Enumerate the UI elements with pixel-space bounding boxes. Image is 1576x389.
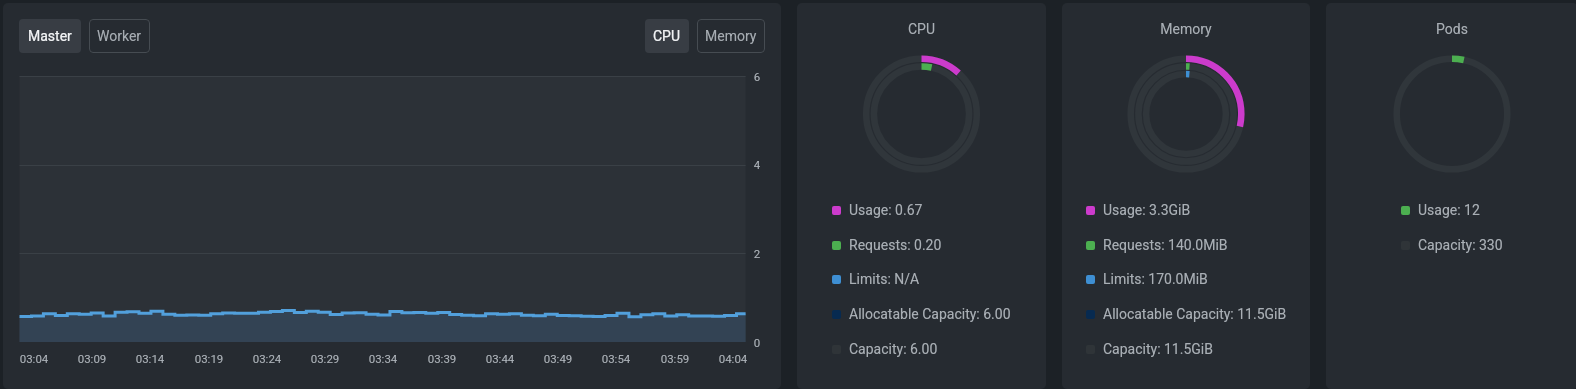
- staticText: 03:44: [470, 352, 530, 365]
- button[interactable]: Requests: 140.0MiB: [1086, 235, 1228, 255]
- staticText: Usage: 0.67: [849, 202, 923, 218]
- staticText: 03:19: [179, 352, 239, 365]
- staticText: 4: [748, 158, 766, 171]
- staticText: Worker: [97, 28, 142, 44]
- staticText: Capacity: 330: [1418, 237, 1503, 253]
- button[interactable]: Worker: [89, 19, 150, 53]
- staticText: Usage: 3.3GiB: [1103, 202, 1191, 218]
- staticText: 6: [748, 70, 766, 83]
- staticText: 03:14: [120, 352, 180, 365]
- button[interactable]: Limits: 170.0MiB: [1086, 269, 1208, 289]
- staticText: Limits: N/A: [849, 271, 920, 287]
- staticText: CPU: [797, 21, 1046, 37]
- staticText: 0: [748, 336, 766, 349]
- button[interactable]: Usage: 3.3GiB: [1086, 200, 1191, 220]
- button[interactable]: Memory: [697, 19, 765, 53]
- staticText: 03:04: [4, 352, 64, 365]
- staticText: 03:29: [295, 352, 355, 365]
- staticText: 03:09: [62, 352, 122, 365]
- staticText: CPU: [653, 28, 681, 44]
- button[interactable]: Allocatable Capacity: 6.00: [832, 304, 1011, 324]
- staticText: Usage: 12: [1418, 202, 1480, 218]
- staticText: Requests: 140.0MiB: [1103, 237, 1228, 253]
- staticText: 03:34: [353, 352, 413, 365]
- staticText: 03:49: [528, 352, 588, 365]
- staticText: Memory: [705, 28, 757, 44]
- staticText: 03:39: [412, 352, 472, 365]
- button[interactable]: Master: [19, 19, 81, 53]
- button[interactable]: Usage: 12: [1401, 200, 1480, 220]
- staticText: 03:59: [645, 352, 705, 365]
- staticText: 03:54: [586, 352, 646, 365]
- staticText: Capacity: 6.00: [849, 341, 938, 357]
- staticText: 04:04: [703, 352, 763, 365]
- button[interactable]: Capacity: 330: [1401, 235, 1503, 255]
- staticText: 03:24: [237, 352, 297, 365]
- button[interactable]: Requests: 0.20: [832, 235, 942, 255]
- button[interactable]: CPU: [645, 19, 689, 53]
- button[interactable]: Capacity: 11.5GiB: [1086, 339, 1213, 359]
- staticText: Memory: [1062, 21, 1310, 37]
- staticText: Master: [28, 28, 72, 44]
- button[interactable]: Usage: 0.67: [832, 200, 923, 220]
- button[interactable]: Limits: N/A: [832, 269, 920, 289]
- staticText: Capacity: 11.5GiB: [1103, 341, 1213, 357]
- staticText: Limits: 170.0MiB: [1103, 271, 1208, 287]
- button[interactable]: Capacity: 6.00: [832, 339, 938, 359]
- staticText: 2: [748, 247, 766, 260]
- staticText: Requests: 0.20: [849, 237, 942, 253]
- staticText: Pods: [1326, 21, 1576, 37]
- staticText: Allocatable Capacity: 6.00: [849, 306, 1011, 322]
- button[interactable]: Allocatable Capacity: 11.5GiB: [1086, 304, 1287, 324]
- staticText: Allocatable Capacity: 11.5GiB: [1103, 306, 1287, 322]
